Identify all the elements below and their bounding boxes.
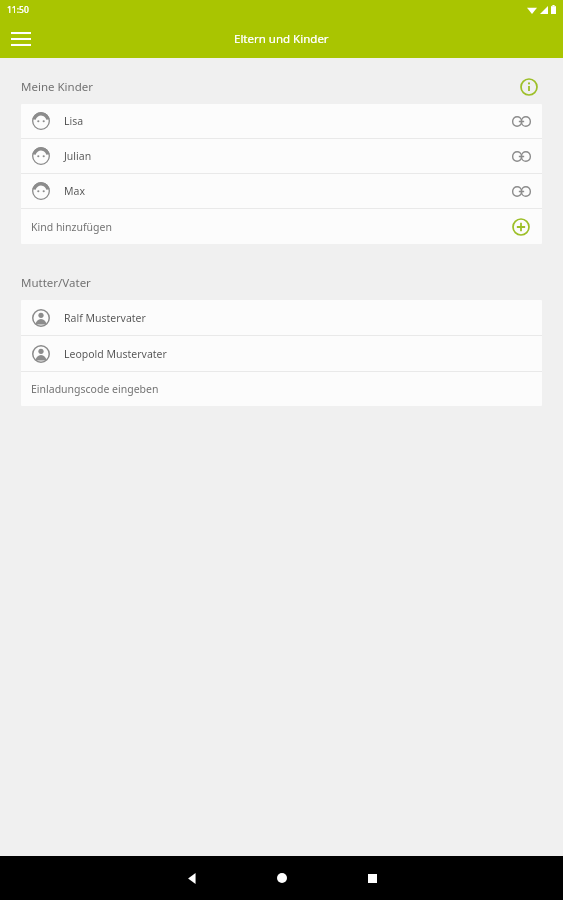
button[interactable]: Verknuepfen xyxy=(507,107,535,135)
button[interactable]: Ralf Mustervater xyxy=(21,300,542,335)
button[interactable]: Recent apps xyxy=(350,856,394,900)
button[interactable]: Leopold Mustervater xyxy=(21,336,542,371)
staticText: Julian xyxy=(64,149,92,163)
button[interactable]: Kind hinzufügen xyxy=(21,209,542,244)
button[interactable]: Home xyxy=(260,856,304,900)
button[interactable]: Max xyxy=(21,174,542,208)
button[interactable]: Lisa xyxy=(21,104,542,138)
staticText: Max xyxy=(64,184,85,198)
button[interactable]: Verknuepfen xyxy=(507,142,535,170)
button[interactable]: Einladungscode eingeben xyxy=(21,372,542,406)
staticText: Eltern und Kinder xyxy=(234,31,329,47)
staticText: Kind hinzufügen xyxy=(31,220,112,234)
staticText: Ralf Mustervater xyxy=(64,311,146,325)
staticText: Lisa xyxy=(64,114,84,128)
staticText: 11:50 xyxy=(7,4,29,16)
staticText: Einladungscode eingeben xyxy=(31,382,159,396)
button[interactable]: Julian xyxy=(21,139,542,173)
staticText: Leopold Mustervater xyxy=(64,347,167,361)
staticText: Meine Kinder xyxy=(21,79,93,95)
staticText: Mutter/Vater xyxy=(21,275,91,291)
button[interactable]: Information xyxy=(515,73,543,101)
button[interactable]: Verknuepfen xyxy=(507,177,535,205)
button[interactable]: Back xyxy=(170,856,214,900)
button[interactable]: Kind hinzufuegen xyxy=(507,213,535,241)
button[interactable]: Menu xyxy=(3,21,39,57)
